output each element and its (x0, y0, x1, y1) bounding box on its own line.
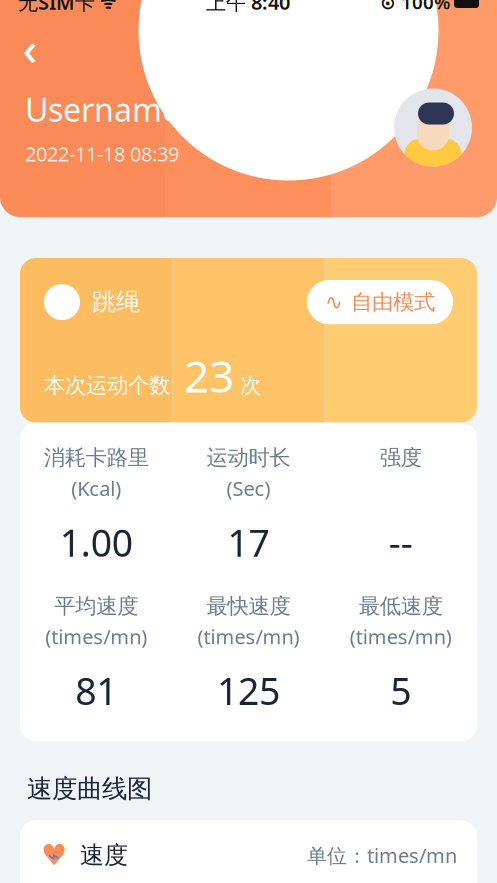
staticText: (Kcal) (71, 475, 121, 501)
staticText: ♥ (41, 838, 67, 872)
staticText: 自由模式 (351, 289, 435, 315)
staticText: 本次运动个数 (44, 372, 170, 398)
staticText: 23 (184, 346, 234, 405)
staticText: 1.00 (60, 517, 133, 567)
staticText: 5 (390, 666, 411, 715)
staticText: (Sec) (226, 475, 270, 501)
staticText: 运动时长 (206, 445, 290, 471)
staticText: 速度曲线图 (27, 773, 152, 804)
staticText: 速度 (80, 840, 128, 870)
staticText: 单位：times/mn (307, 842, 457, 868)
staticText: ⌁ (48, 845, 60, 867)
staticText: ‹ (22, 18, 37, 78)
staticText: -- (389, 517, 413, 567)
button[interactable]: Back (8, 26, 52, 70)
staticText: 跳绳 (92, 287, 140, 317)
staticText: 最低速度 (359, 593, 443, 619)
staticText: 81 (75, 666, 117, 715)
button[interactable]: ∿ (307, 280, 453, 324)
staticText: 2022-11-18 08:39 (25, 140, 179, 167)
staticText: 消耗卡路里 (44, 445, 149, 471)
staticText: (times/mn) (45, 623, 147, 650)
staticText: Username (25, 88, 180, 130)
staticText: 次 (240, 372, 261, 398)
staticText: 强度 (380, 445, 422, 471)
staticText: 125 (217, 666, 280, 715)
staticText: ⊙ 100% (380, 0, 450, 14)
staticText: 17 (227, 517, 269, 567)
staticText: ∿ (325, 290, 343, 314)
staticText: ᯤ (95, 0, 116, 13)
staticText: 上午 8:40 (206, 0, 290, 15)
staticText: (times/mn) (350, 623, 452, 650)
staticText: 平均速度 (54, 593, 138, 619)
staticText: 无SIM卡 (18, 0, 95, 15)
staticText: 最快速度 (206, 593, 290, 619)
staticText: (times/mn) (197, 623, 299, 650)
